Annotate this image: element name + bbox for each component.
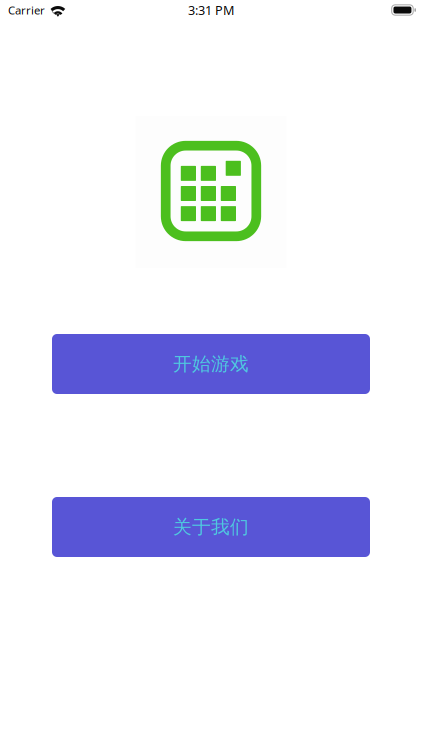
staticText: 3:31 PM [188,1,234,19]
staticText: 关于我们 [173,515,249,539]
button[interactable]: 关于我们 [52,497,370,557]
button[interactable]: 开始游戏 [52,334,370,394]
staticText: 开始游戏 [173,352,249,376]
staticText: Carrier [8,2,45,18]
